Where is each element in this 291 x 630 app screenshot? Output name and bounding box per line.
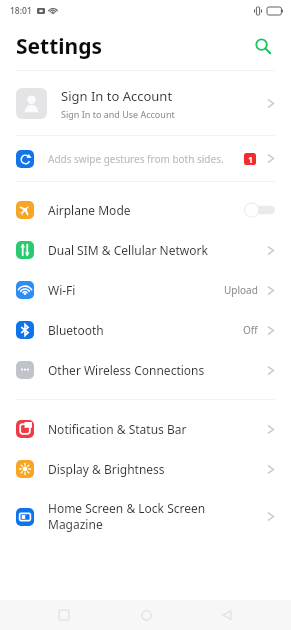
button[interactable]: Home — [129, 600, 163, 630]
button[interactable]: Notification & Status Bar — [0, 409, 291, 449]
staticText: Wi-Fi — [48, 282, 218, 298]
button[interactable]: Back — [210, 600, 244, 630]
button[interactable]: Home Screen & Lock Screen Magazine — [0, 489, 291, 544]
button[interactable]: Recents — [47, 600, 81, 630]
button[interactable]: Adds swipe gestures from both sides. — [0, 136, 291, 181]
staticText: 18:01 — [10, 5, 32, 17]
button[interactable]: Dual SIM & Cellular Network — [0, 230, 291, 270]
button[interactable]: Bluetooth — [0, 310, 291, 350]
staticText: Settings — [16, 32, 103, 61]
button[interactable]: Airplane Mode — [0, 190, 291, 230]
staticText: Adds swipe gestures from both sides. — [48, 152, 244, 166]
staticText: Notification & Status Bar — [48, 421, 261, 437]
button[interactable]: Other Wireless Connections — [0, 350, 291, 390]
staticText: Other Wireless Connections — [48, 362, 261, 378]
staticText: Bluetooth — [48, 322, 237, 338]
button[interactable]: Sign In to Account — [0, 71, 291, 135]
staticText: Display & Brightness — [48, 461, 261, 477]
button[interactable]: Display & Brightness — [0, 449, 291, 489]
staticText: 1 — [248, 154, 253, 165]
button[interactable]: Search — [248, 31, 278, 61]
staticText: Dual SIM & Cellular Network — [48, 242, 261, 258]
staticText: Sign In to and Use Account — [61, 108, 175, 120]
staticText: Sign In to Account — [61, 87, 173, 105]
button[interactable]: Wi-Fi — [0, 270, 291, 310]
staticText: Off — [243, 323, 258, 337]
staticText: Airplane Mode — [48, 202, 237, 218]
staticText: Home Screen & Lock Screen Magazine — [48, 500, 261, 533]
staticText: Upload — [224, 283, 258, 297]
